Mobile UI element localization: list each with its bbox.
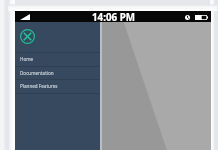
button[interactable]: Close navigation drawer	[20, 29, 35, 44]
staticText: Documentation	[20, 70, 54, 76]
staticText: Planned Features	[20, 83, 58, 89]
staticText: 14:06 PM	[92, 11, 136, 22]
button[interactable]: Documentation	[15, 66, 100, 80]
button[interactable]: Home	[15, 52, 100, 66]
staticText: Home	[20, 56, 34, 62]
button[interactable]: Planned Features	[15, 79, 100, 93]
